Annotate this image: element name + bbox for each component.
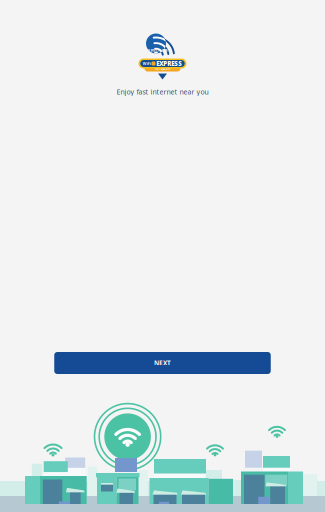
button[interactable]: NEXT (54, 352, 271, 374)
staticText: WiFi (143, 61, 151, 66)
staticText: DIRECTLINK (147, 48, 167, 52)
staticText: EXPRESS (156, 59, 182, 68)
staticText: NEXT (154, 359, 171, 367)
staticText: RETAILER (155, 66, 170, 71)
staticText: Enjoy fast internet near you (116, 87, 208, 96)
